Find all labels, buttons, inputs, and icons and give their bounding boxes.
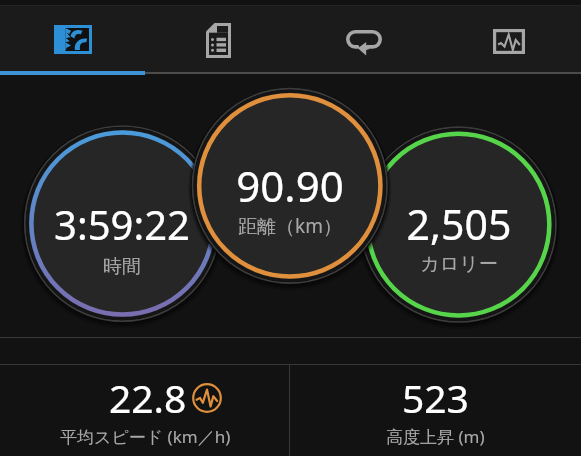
staticText: 高度上昇 (m) — [386, 425, 485, 448]
staticText: 22.8 — [109, 371, 187, 424]
button[interactable]: カロリー — [368, 134, 550, 316]
button[interactable]: 時間 — [31, 133, 213, 315]
staticText: 523 — [402, 371, 469, 424]
button[interactable]: 22.8 — [0, 365, 290, 456]
button[interactable]: Map — [0, 0, 146, 74]
button[interactable]: Charts — [436, 0, 581, 74]
staticText: 3:59:22 — [0, 197, 262, 251]
staticText: 90.90 — [150, 157, 430, 214]
button[interactable]: 距離（km） — [199, 95, 380, 276]
staticText: 平均スピード (km／h) — [60, 425, 231, 448]
button[interactable]: Details — [146, 0, 291, 74]
button[interactable]: Laps — [291, 0, 436, 74]
staticText: カロリー — [319, 252, 581, 276]
staticText: 時間 — [0, 255, 262, 279]
staticText: 距離（km） — [150, 213, 430, 239]
button[interactable]: 523 — [290, 365, 581, 456]
staticText: 2,505 — [319, 196, 581, 252]
